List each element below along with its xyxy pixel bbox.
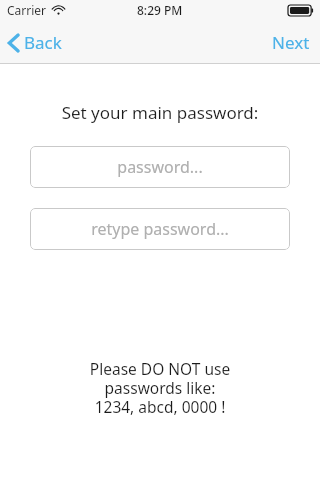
button[interactable]: retype password... [30, 208, 290, 250]
staticText: Carrier [7, 2, 47, 18]
button[interactable]: Back [0, 25, 72, 60]
staticText: retype password... [91, 218, 229, 240]
staticText: password... [117, 156, 203, 178]
staticText: Set your main password: [0, 101, 320, 124]
staticText: Please DO NOT use passwords like: 1234, … [0, 358, 320, 417]
staticText: Back [24, 31, 62, 54]
button[interactable]: password... [30, 146, 290, 188]
button[interactable]: Next [262, 23, 320, 62]
staticText: Next [272, 31, 310, 54]
staticText: 8:29 PM [137, 2, 183, 18]
